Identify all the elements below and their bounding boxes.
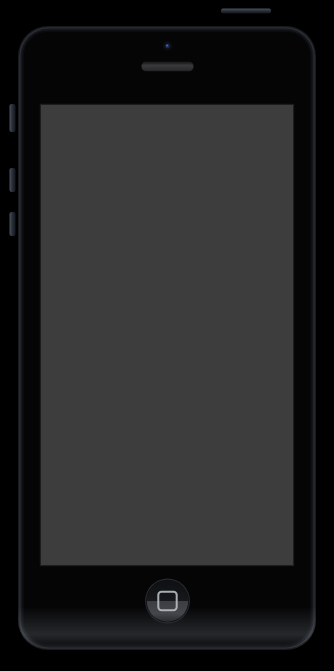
button[interactable]: Smartphone device mockup xyxy=(0,0,334,671)
